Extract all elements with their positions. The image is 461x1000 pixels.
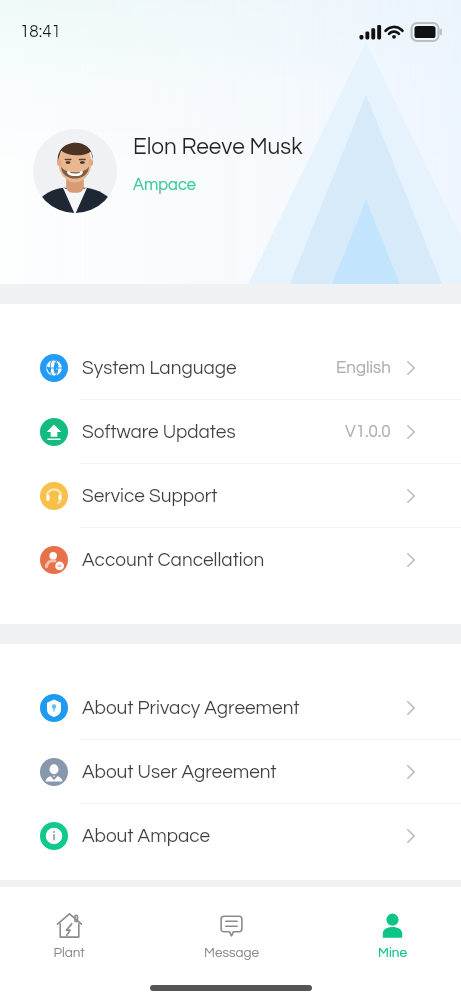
button[interactable]: Account Cancellation <box>0 528 461 592</box>
button[interactable]: Service Support <box>0 464 461 528</box>
staticText: Software Updates <box>82 422 236 442</box>
staticText: Plant <box>53 946 85 960</box>
staticText: 18:41 <box>20 23 61 41</box>
button[interactable]: About Ampace <box>0 804 461 868</box>
staticText: Ampace <box>133 176 197 193</box>
staticText: Message <box>204 946 259 960</box>
button[interactable]: Message <box>199 900 263 971</box>
button[interactable]: About User Agreement <box>0 740 461 804</box>
button[interactable]: About Privacy Agreement <box>0 676 461 740</box>
staticText: English <box>336 359 391 377</box>
button[interactable]: Software Updates <box>0 400 461 464</box>
staticText: System Language <box>82 358 237 378</box>
staticText: About User Agreement <box>82 762 277 782</box>
staticText: Account Cancellation <box>82 550 265 570</box>
button[interactable]: System Language <box>0 336 461 400</box>
staticText: About Ampace <box>82 826 211 846</box>
staticText: Mine <box>378 946 407 960</box>
button[interactable]: Plant <box>37 900 101 971</box>
button[interactable]: Mine <box>360 900 424 971</box>
staticText: About Privacy Agreement <box>82 698 300 718</box>
staticText: Elon Reeve Musk <box>133 136 303 159</box>
staticText: V1.0.0 <box>345 423 391 441</box>
staticText: Service Support <box>82 486 218 506</box>
